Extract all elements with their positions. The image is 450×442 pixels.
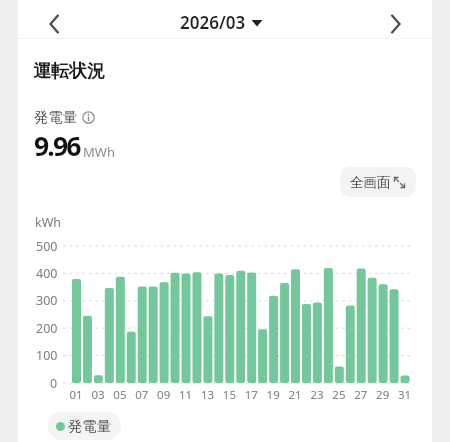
button[interactable]: 発電量 bbox=[48, 412, 121, 440]
staticText: MWh bbox=[83, 143, 115, 161]
staticText: 2026/03 bbox=[180, 11, 246, 34]
staticText: 運転状況 bbox=[33, 60, 105, 83]
staticText: 発電量 bbox=[68, 417, 112, 435]
staticText: 全画面 bbox=[350, 174, 391, 191]
button[interactable] bbox=[36, 6, 72, 42]
button[interactable] bbox=[378, 6, 414, 42]
button[interactable]: 2026/03 bbox=[180, 11, 263, 34]
button[interactable]: 全画面 bbox=[340, 167, 416, 197]
staticText: 発電量 bbox=[34, 108, 78, 126]
staticText: 9.96 bbox=[34, 128, 80, 164]
